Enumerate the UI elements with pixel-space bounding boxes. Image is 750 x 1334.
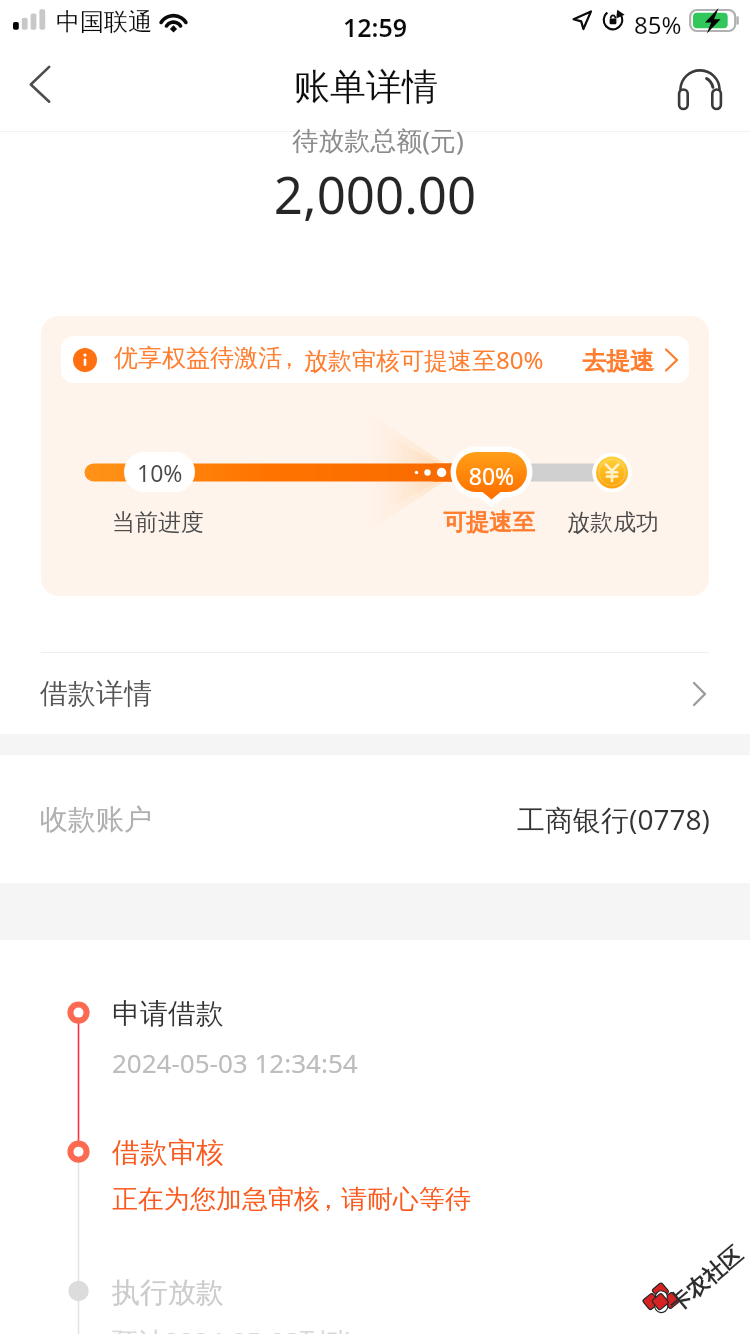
staticText: 去提速 bbox=[582, 346, 654, 376]
button[interactable]: 借款详情 bbox=[0, 653, 750, 734]
staticText: 账单详情 bbox=[294, 64, 438, 109]
button[interactable]: 在线客服 bbox=[670, 64, 730, 124]
staticText: 放款审核可提速至80% bbox=[304, 343, 544, 376]
staticText: 10% bbox=[137, 457, 183, 488]
staticText: 可提速至 bbox=[443, 508, 535, 537]
staticText: 优享权益待激活 bbox=[114, 343, 282, 373]
staticText: 12:59 bbox=[343, 10, 408, 44]
staticText: 85% bbox=[634, 8, 682, 41]
staticText: 借款审核 bbox=[112, 1135, 224, 1170]
staticText: 预计2024-05-03到账 bbox=[112, 1323, 352, 1334]
staticText: 待放款总额(元) bbox=[3, 122, 750, 158]
staticText: 工商银行(0778) bbox=[517, 800, 710, 838]
staticText: 80% bbox=[456, 460, 527, 491]
staticText: 执行放款 bbox=[112, 1275, 224, 1310]
staticText: 正在为您加急审核 bbox=[112, 1183, 320, 1216]
staticText: 2,000.00 bbox=[0, 159, 750, 228]
button[interactable]: 优享权益待激活 bbox=[61, 336, 689, 383]
staticText: ， bbox=[315, 1183, 336, 1216]
button[interactable]: 返回 bbox=[8, 62, 72, 126]
staticText: 放款成功 bbox=[567, 508, 659, 537]
staticText: 借款详情 bbox=[40, 676, 152, 711]
staticText: 中国联通 bbox=[56, 7, 152, 37]
staticText: ， bbox=[277, 343, 299, 373]
staticText: 2024-05-03 12:34:54 bbox=[112, 1045, 358, 1080]
staticText: 卡农社区 bbox=[663, 1241, 748, 1319]
staticText: 当前进度 bbox=[112, 508, 204, 537]
staticText: 请耐心等待 bbox=[341, 1183, 471, 1216]
staticText: 申请借款 bbox=[112, 996, 224, 1031]
staticText: 收款账户 bbox=[40, 802, 152, 837]
